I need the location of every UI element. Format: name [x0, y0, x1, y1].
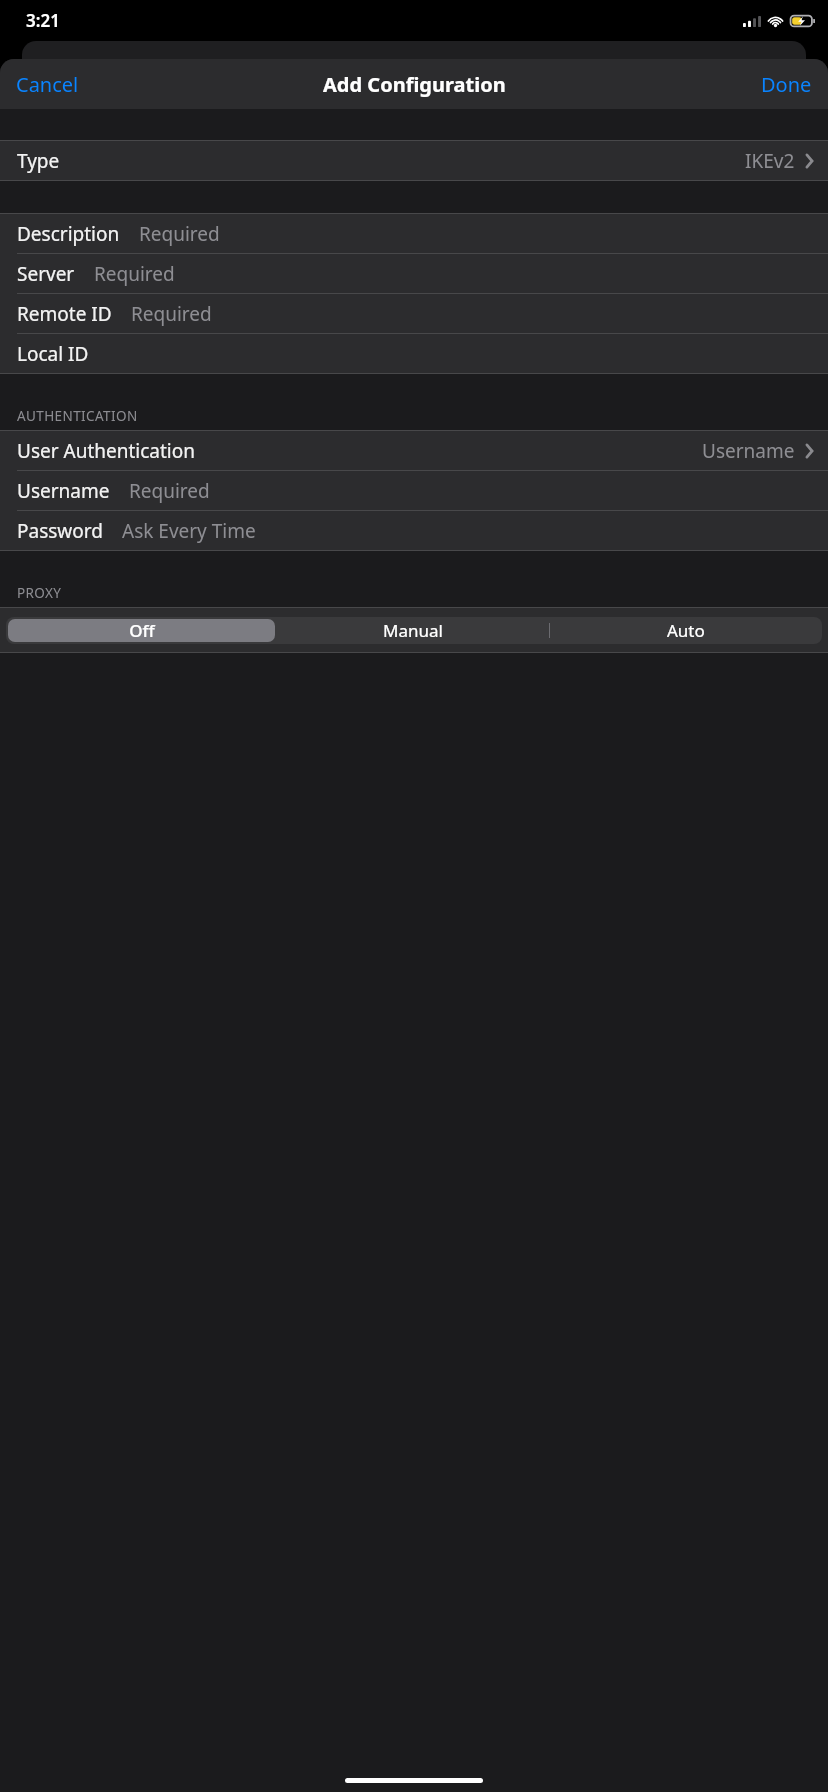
staticText: User Authentication [17, 438, 195, 464]
staticText: Done [761, 71, 812, 98]
staticText: Auto [667, 619, 705, 642]
staticText: Required [131, 301, 212, 327]
staticText: Cancel [16, 71, 79, 98]
staticText: Type [17, 148, 60, 174]
staticText: Ask Every Time [122, 518, 256, 544]
button[interactable]: User Authentication [0, 431, 828, 470]
staticText: Required [94, 261, 175, 287]
button[interactable]: Local ID [0, 334, 828, 373]
staticText: Local ID [17, 341, 89, 367]
staticText: Required [129, 478, 210, 504]
staticText: Description [17, 221, 120, 247]
staticText: Server [17, 261, 75, 287]
button[interactable]: Username [0, 471, 828, 510]
button[interactable]: Server [0, 254, 828, 293]
staticText: IKEv2 [745, 148, 795, 174]
staticText: Remote ID [17, 301, 112, 327]
staticText: AUTHENTICATION [17, 407, 138, 425]
button[interactable]: Cancel [0, 63, 95, 106]
staticText: Required [139, 221, 220, 247]
button[interactable]: Remote ID [0, 294, 828, 333]
staticText: PROXY [17, 584, 62, 602]
button[interactable]: Done [745, 63, 828, 106]
staticText: 3:21 [26, 9, 60, 32]
button[interactable]: Manual [277, 617, 549, 644]
staticText: Add Configuration [323, 71, 506, 98]
staticText: Manual [383, 619, 443, 642]
staticText: Off [129, 619, 155, 642]
button[interactable]: Off [8, 619, 275, 642]
button[interactable]: Description [0, 214, 828, 253]
staticText: Password [17, 518, 103, 544]
staticText: Username [17, 478, 110, 504]
button[interactable]: Auto [550, 617, 822, 644]
button[interactable]: Password [0, 511, 828, 550]
staticText: Username [702, 438, 795, 464]
button[interactable]: Type [0, 141, 828, 180]
